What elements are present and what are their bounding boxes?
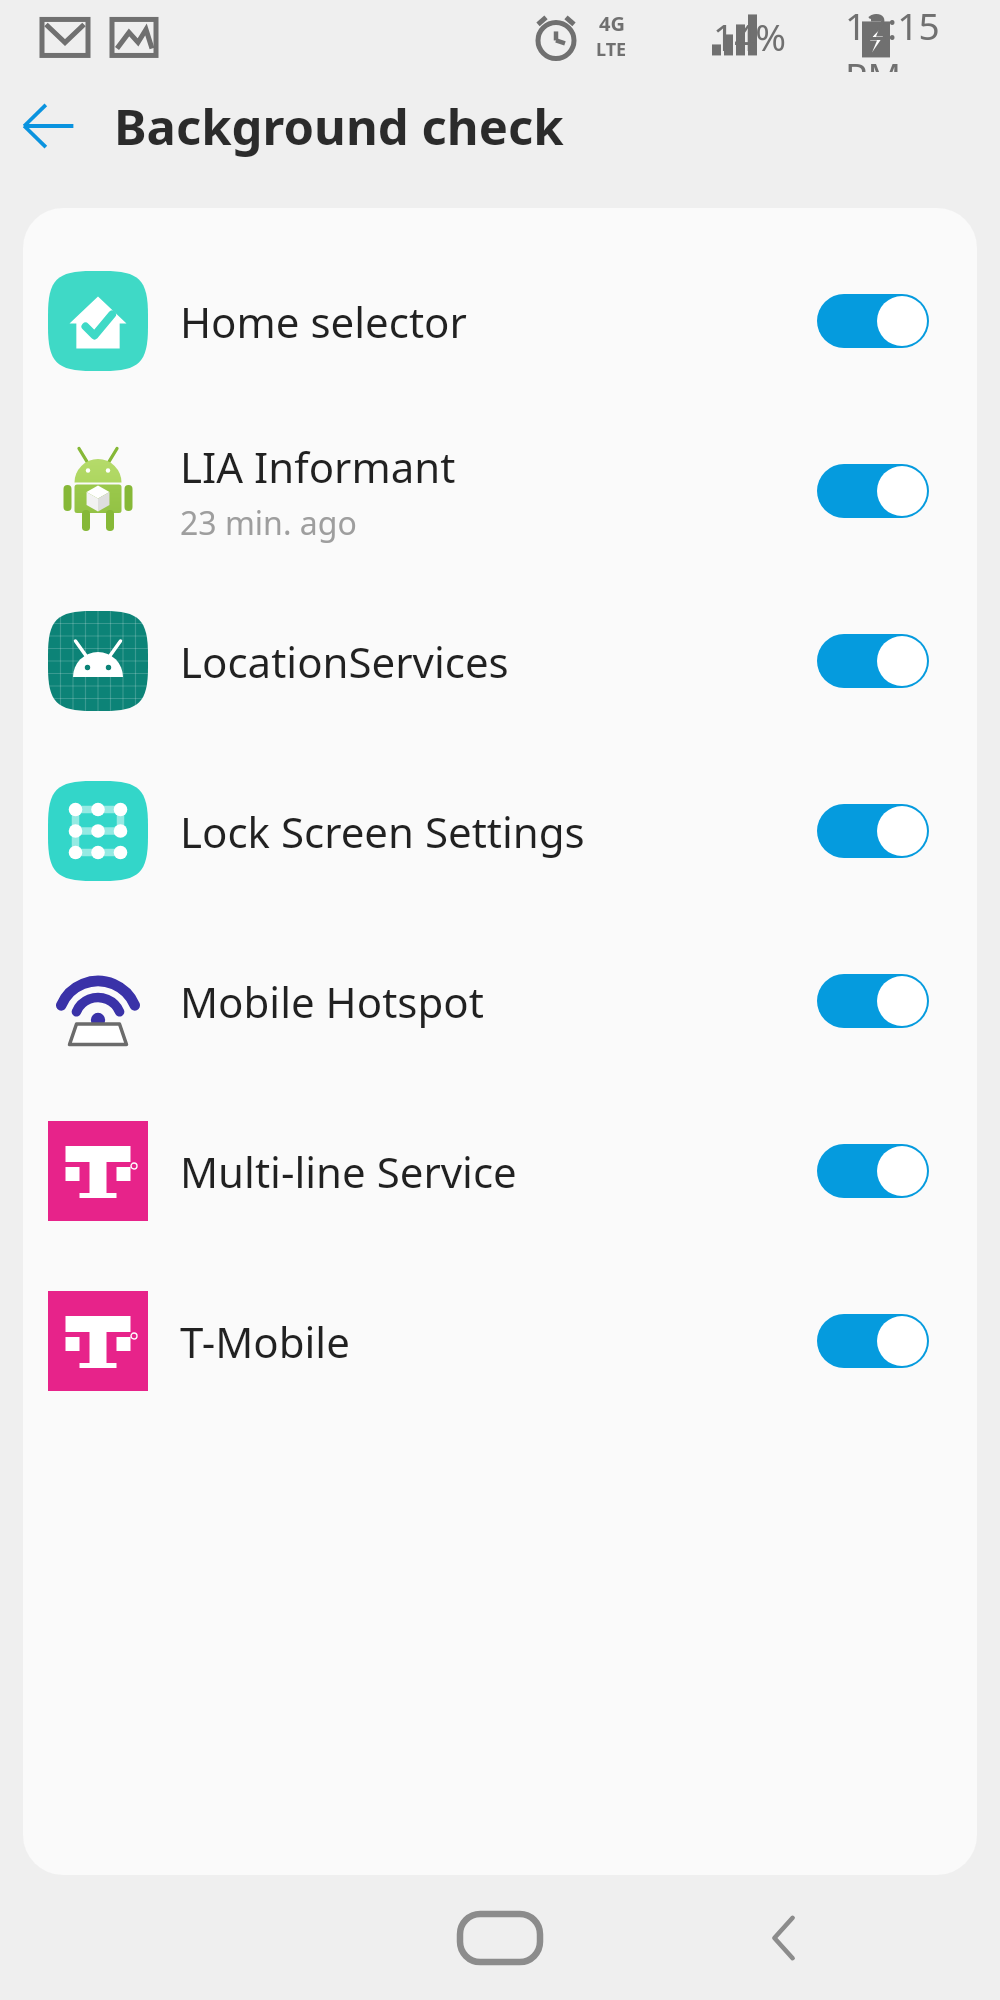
button[interactable]: Toggle on bbox=[817, 1144, 929, 1198]
button[interactable]: Toggle on bbox=[817, 1314, 929, 1368]
button[interactable]: Toggle on bbox=[817, 294, 929, 348]
staticText: Lock Screen Settings bbox=[180, 803, 585, 860]
button[interactable]: Home selector bbox=[23, 236, 977, 406]
button[interactable]: LocationServices bbox=[23, 576, 977, 746]
staticText: Multi-line Service bbox=[180, 1143, 517, 1200]
staticText: 14% bbox=[713, 11, 787, 61]
button[interactable]: Mobile Hotspot bbox=[23, 916, 977, 1086]
staticText: 4G bbox=[599, 10, 625, 37]
button[interactable]: LIA Informant bbox=[23, 406, 977, 576]
button[interactable]: T-Mobile bbox=[23, 1256, 977, 1426]
staticText: Mobile Hotspot bbox=[180, 973, 484, 1030]
staticText: LIA Informant bbox=[180, 438, 456, 495]
button[interactable]: Home bbox=[435, 1892, 565, 1984]
staticText: Background check bbox=[114, 93, 564, 160]
staticText: Home selector bbox=[180, 293, 467, 350]
staticText: LocationServices bbox=[180, 633, 509, 690]
button[interactable]: Toggle on bbox=[817, 974, 929, 1028]
button[interactable]: Toggle on bbox=[817, 634, 929, 688]
staticText: LTE bbox=[596, 37, 627, 62]
button[interactable]: Toggle on bbox=[817, 804, 929, 858]
staticText: 23 min. ago bbox=[180, 501, 357, 545]
button[interactable]: Lock Screen Settings bbox=[23, 746, 977, 916]
button[interactable]: Back bbox=[738, 1892, 830, 1984]
button[interactable]: Toggle on bbox=[817, 464, 929, 518]
button[interactable]: Multi-line Service bbox=[23, 1086, 977, 1256]
staticText: T-Mobile bbox=[180, 1313, 350, 1370]
staticText: 12:15 PM bbox=[845, 0, 1000, 72]
button[interactable]: Navigate up bbox=[0, 78, 96, 174]
